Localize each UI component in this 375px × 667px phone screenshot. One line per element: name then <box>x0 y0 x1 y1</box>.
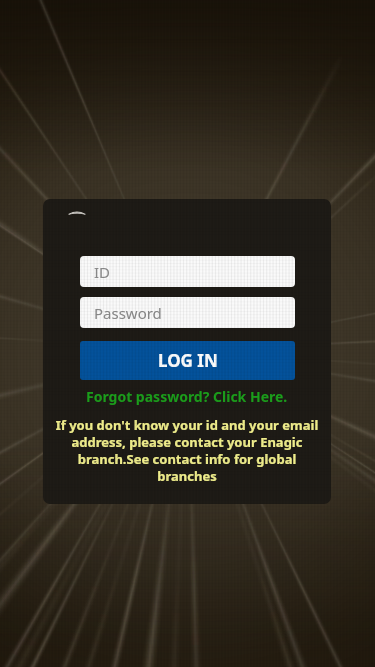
staticText: Password <box>94 303 162 323</box>
staticText: ID <box>94 262 111 282</box>
other: Logo <box>68 209 86 215</box>
button[interactable]: LOG IN <box>80 341 295 380</box>
button[interactable]: Forgot password? Click Here. <box>80 385 294 408</box>
button[interactable]: ID <box>80 256 295 287</box>
staticText: If you don't know your id and your email… <box>43 416 331 485</box>
button[interactable]: Password <box>80 297 295 328</box>
staticText: LOG IN <box>158 349 218 372</box>
staticText: Forgot password? Click Here. <box>86 387 288 406</box>
